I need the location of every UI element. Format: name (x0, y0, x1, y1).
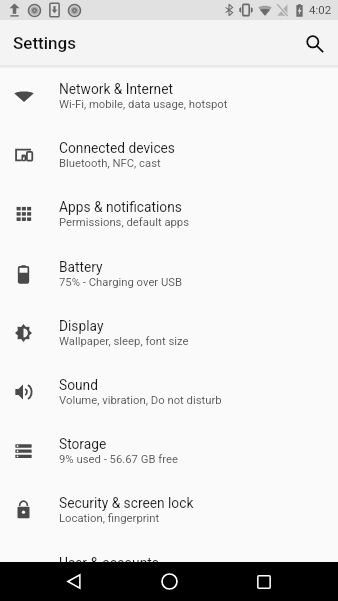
button[interactable]: Sound (0, 362, 338, 421)
button[interactable]: Recents (240, 562, 288, 601)
button[interactable]: User & accounts (0, 540, 338, 562)
staticText: Apps & notifications (59, 199, 182, 215)
staticText: Network & Internet (59, 81, 173, 97)
button[interactable]: Battery (0, 244, 338, 303)
staticText: Wallpaper, sleep, font size (59, 335, 189, 348)
staticText: Permissions, default apps (59, 216, 190, 229)
staticText: Sound (59, 377, 98, 393)
button[interactable]: Display (0, 303, 338, 362)
staticText: Security & screen lock (59, 495, 194, 511)
staticText: Connected devices (59, 140, 175, 156)
staticText: User & accounts (59, 555, 159, 562)
staticText: Volume, vibration, Do not disturb (59, 394, 222, 407)
staticText: Settings (13, 33, 76, 53)
staticText: 4:02 (309, 3, 332, 16)
staticText: 75% - Charging over USB (59, 276, 183, 289)
button[interactable]: Search (297, 26, 331, 60)
staticText: Bluetooth, NFC, cast (59, 157, 161, 170)
staticText: Location, fingerprint (59, 512, 160, 525)
staticText: Storage (59, 436, 107, 452)
button[interactable]: Network & Internet (0, 66, 338, 125)
button[interactable]: Apps & notifications (0, 184, 338, 243)
staticText: Battery (59, 259, 103, 275)
staticText: 9% used - 56.67 GB free (59, 453, 178, 466)
button[interactable]: Storage (0, 421, 338, 480)
staticText: Display (59, 318, 104, 334)
button[interactable]: Back (50, 562, 98, 601)
staticText: Wi-Fi, mobile, data usage, hotspot (59, 98, 228, 111)
button[interactable]: Home (145, 562, 193, 601)
button[interactable]: Connected devices (0, 125, 338, 184)
button[interactable]: Security & screen lock (0, 480, 338, 539)
